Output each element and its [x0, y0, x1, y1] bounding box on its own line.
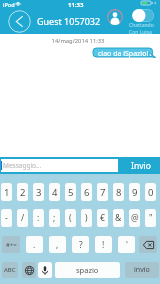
- staticText: /: [21, 212, 25, 224]
- button[interactable]: ;: [49, 209, 60, 227]
- staticText: 4: [52, 186, 58, 199]
- button[interactable]: ABC: [2, 262, 18, 278]
- staticText: Chattando: [129, 22, 154, 29]
- button[interactable]: !: [95, 236, 112, 253]
- button[interactable]: :: [33, 209, 44, 227]
- button[interactable]: Messaggio...: [1, 159, 118, 172]
- button[interactable]: 0: [145, 183, 156, 201]
- staticText: -: [5, 212, 8, 224]
- staticText: 2: [20, 186, 26, 199]
- button[interactable]: .: [26, 236, 43, 253]
- button[interactable]: Dictation: [38, 262, 52, 278]
- staticText: 9: [132, 186, 138, 199]
- staticText: :: [37, 212, 40, 224]
- staticText: 1: [4, 186, 10, 199]
- button[interactable]: (: [65, 209, 76, 227]
- staticText: ,: [56, 239, 59, 251]
- button[interactable]: 1: [1, 183, 12, 201]
- staticText: #+=: [6, 241, 17, 249]
- staticText: 7: [100, 186, 106, 199]
- button[interactable]: Toggle chat: [132, 9, 154, 22]
- button[interactable]: Invio: [120, 157, 160, 174]
- staticText: Messaggio...: [3, 161, 42, 170]
- staticText: ?: [79, 239, 83, 251]
- staticText: !: [102, 239, 105, 251]
- button[interactable]: €: [97, 209, 108, 227]
- button[interactable]: 5: [65, 183, 76, 201]
- staticText: 8: [116, 186, 122, 199]
- staticText: Invio: [131, 160, 151, 172]
- button[interactable]: Backspace: [139, 236, 157, 253]
- staticText: Con Luisa: [129, 29, 152, 36]
- staticText: ;: [53, 212, 56, 224]
- button[interactable]: 6: [81, 183, 92, 201]
- button[interactable]: #+=: [2, 236, 20, 253]
- button[interactable]: 3: [33, 183, 44, 201]
- button[interactable]: 9: [129, 183, 140, 201]
- button[interactable]: Change keyboard: [22, 262, 36, 278]
- staticText: ciao da iSpazio!: [98, 49, 149, 59]
- staticText: ): [85, 212, 88, 224]
- staticText: 0: [148, 186, 154, 199]
- staticText: invio: [134, 265, 150, 275]
- button[interactable]: 7: [97, 183, 108, 201]
- staticText: Guest 1057032: [37, 15, 101, 27]
- button[interactable]: ?: [72, 236, 89, 253]
- staticText: .: [33, 239, 36, 251]
- button[interactable]: invio: [125, 262, 159, 278]
- staticText: ': [126, 239, 128, 251]
- button[interactable]: @: [129, 209, 140, 227]
- button[interactable]: ": [145, 209, 156, 227]
- button[interactable]: Contact profile: [107, 9, 123, 25]
- staticText: ": [149, 212, 153, 224]
- staticText: ABC: [4, 266, 16, 274]
- staticText: €: [100, 212, 105, 224]
- button[interactable]: /: [17, 209, 28, 227]
- staticText: 11:33: [68, 1, 84, 9]
- staticText: 5: [68, 186, 74, 199]
- button[interactable]: &: [113, 209, 124, 227]
- staticText: 6: [84, 186, 90, 199]
- staticText: &: [115, 212, 122, 224]
- button[interactable]: -: [1, 209, 12, 227]
- button[interactable]: 2: [17, 183, 28, 201]
- button[interactable]: 8: [113, 183, 124, 201]
- button[interactable]: ,: [49, 236, 66, 253]
- button[interactable]: spazio: [55, 262, 120, 278]
- staticText: @: [131, 212, 139, 224]
- button[interactable]: Back: [8, 10, 31, 33]
- button[interactable]: ): [81, 209, 92, 227]
- staticText: 3: [36, 186, 42, 199]
- staticText: 14/mag/2014 11:33: [0, 37, 158, 45]
- staticText: (: [69, 212, 72, 224]
- button[interactable]: ': [118, 236, 135, 253]
- button[interactable]: 4: [49, 183, 60, 201]
- staticText: spazio: [76, 265, 99, 275]
- staticText: iPod: [3, 1, 15, 8]
